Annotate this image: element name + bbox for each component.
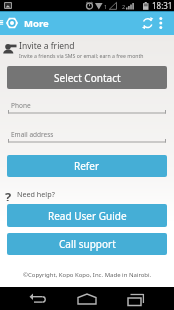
staticText: Phone — [11, 101, 31, 110]
staticText: 18:31 — [152, 0, 173, 11]
staticText: Select Contact — [54, 71, 121, 85]
staticText: ? — [5, 188, 12, 201]
staticText: Read User Guide — [48, 209, 127, 223]
button[interactable] — [28, 290, 48, 308]
button[interactable] — [77, 290, 97, 308]
staticText: Invite a friend — [19, 40, 75, 50]
button[interactable]: Select Contact — [7, 66, 167, 89]
staticText: Need help? — [17, 189, 55, 199]
button[interactable] — [126, 290, 146, 308]
button[interactable]: Refer — [7, 155, 167, 177]
staticText: Call support — [59, 237, 116, 251]
staticText: 2 — [122, 3, 126, 10]
staticText: 1 — [104, 3, 108, 10]
staticText: Invite a friends via SMS or email; earn … — [19, 52, 144, 59]
staticText: More — [24, 17, 49, 30]
button[interactable]: Call support — [7, 233, 167, 255]
staticText: Email address — [11, 130, 54, 139]
button[interactable] — [141, 16, 155, 30]
button[interactable] — [155, 11, 167, 35]
staticText: Refer — [74, 159, 100, 173]
staticText: ©Copyright, Kopo Kopo, Inc. Made in Nair… — [23, 271, 152, 279]
button[interactable]: Read User Guide — [7, 204, 167, 227]
